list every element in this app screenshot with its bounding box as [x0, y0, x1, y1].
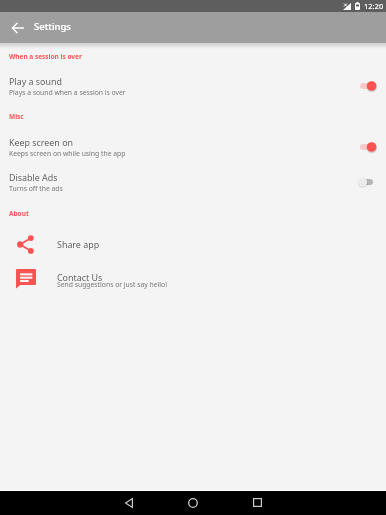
staticText: 12:20	[364, 1, 384, 11]
staticText: Plays a sound when a session is over	[9, 88, 126, 97]
button[interactable]: Recent apps	[225, 490, 289, 515]
button[interactable]: Toggle on	[358, 79, 376, 93]
button[interactable]: Home	[161, 490, 225, 515]
staticText: Play a sound	[9, 75, 62, 87]
staticText: Turns off the ads	[9, 184, 63, 193]
staticText: Send suggestions or just say hello!	[57, 280, 168, 289]
button[interactable]: Contact Us	[0, 268, 386, 294]
button[interactable]: Share app	[0, 231, 386, 257]
button[interactable]: Disable Ads	[0, 168, 386, 196]
staticText: About	[9, 209, 29, 218]
staticText: Contact Us	[57, 271, 103, 283]
staticText: Share app	[57, 238, 100, 250]
staticText: Misc	[9, 112, 24, 121]
button[interactable]: Toggle on	[358, 140, 376, 154]
staticText: Disable Ads	[9, 171, 58, 183]
staticText: Settings	[34, 20, 71, 33]
staticText: When a session is over	[9, 52, 82, 61]
button[interactable]: Keep screen on	[0, 133, 386, 161]
button[interactable]: Back	[6, 16, 30, 40]
staticText: Keep screen on	[9, 136, 74, 148]
button[interactable]: Toggle off	[358, 175, 376, 189]
staticText: Keeps screen on while using the app	[9, 149, 126, 158]
button[interactable]: Play a sound	[0, 72, 386, 100]
button[interactable]: Back	[97, 490, 161, 515]
